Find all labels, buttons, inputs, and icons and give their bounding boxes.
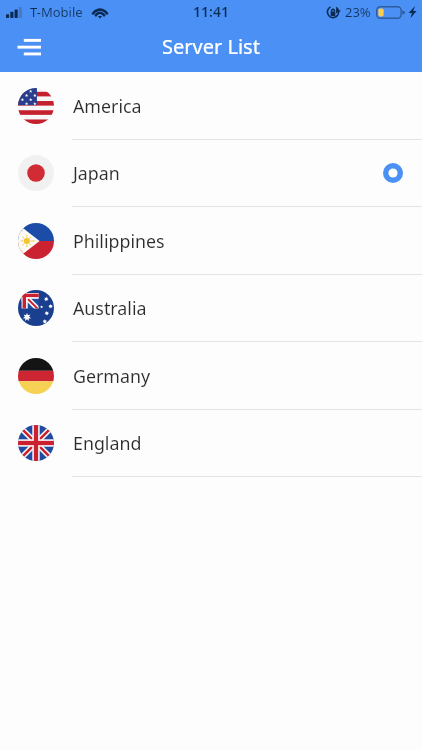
button[interactable]: England [0,410,422,477]
staticText: 23% [345,3,371,21]
staticText: Philippines [73,229,165,253]
button[interactable]: Japan [0,140,422,207]
button[interactable]: Philippines [0,207,422,275]
staticText: T-Mobile [30,3,83,21]
staticText: 11:41 [193,2,229,21]
button[interactable]: America [0,72,422,140]
staticText: Germany [73,364,151,388]
staticText: England [73,431,142,455]
staticText: Australia [73,296,147,320]
staticText: Server List [162,33,260,60]
button[interactable]: Germany [0,342,422,410]
staticText: Japan [73,161,120,185]
button[interactable]: Open navigation menu [6,24,52,68]
button[interactable]: Australia [0,275,422,342]
staticText: America [73,94,142,118]
